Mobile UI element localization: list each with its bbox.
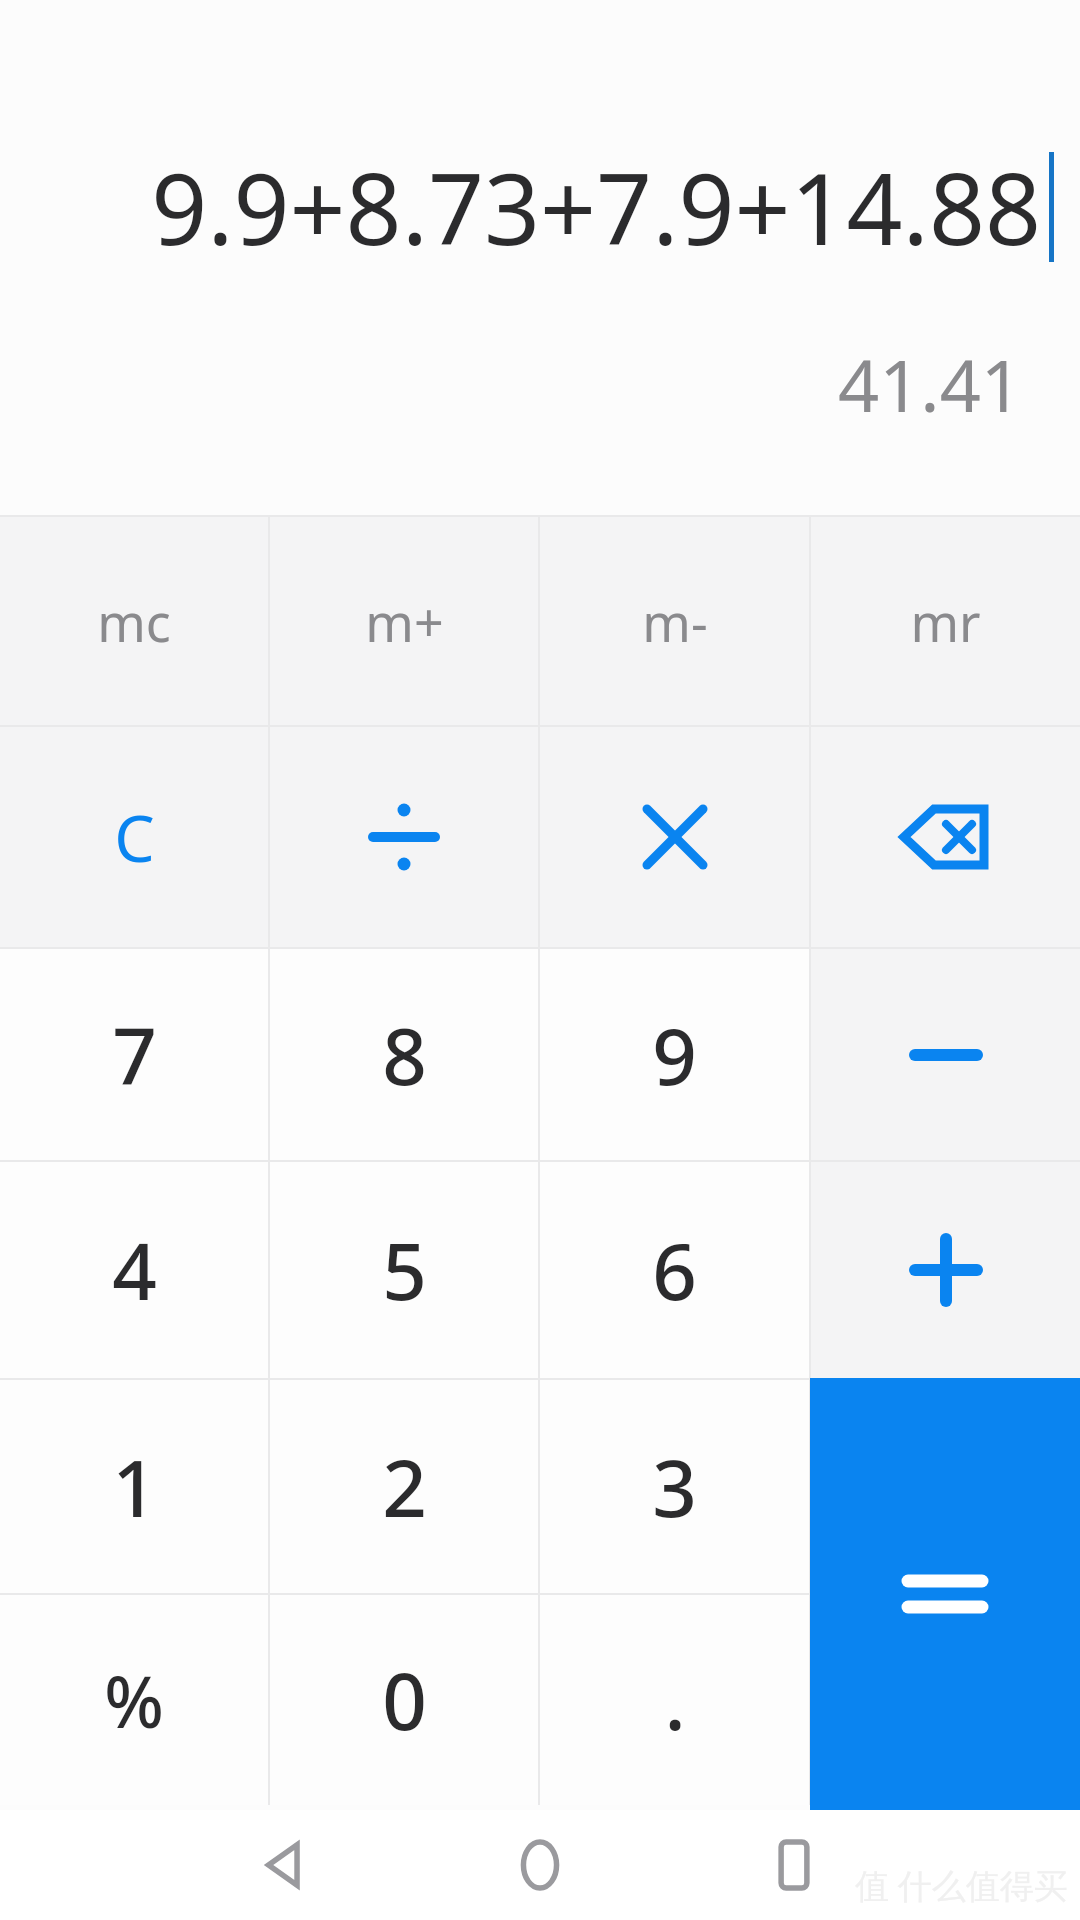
button[interactable]: Recent apps — [748, 1819, 840, 1911]
staticText: 4 — [112, 1217, 157, 1323]
button[interactable]: 1 — [0, 1380, 268, 1593]
button[interactable]: 8 — [270, 949, 538, 1160]
staticText: 8 — [382, 1002, 427, 1108]
staticText: 5 — [382, 1217, 427, 1323]
button[interactable]: Equals — [810, 1378, 1080, 1810]
staticText: m- — [642, 586, 708, 657]
staticText: 值 什么值得买 — [855, 1862, 1068, 1908]
staticText: mc — [97, 586, 171, 657]
button[interactable]: Divide — [270, 727, 538, 947]
staticText: 9.9+8.73+7.9+14.88 — [151, 140, 1041, 273]
button[interactable]: mr — [811, 517, 1080, 725]
staticText: 1 — [112, 1434, 157, 1540]
button[interactable]: % — [0, 1595, 268, 1805]
button[interactable]: 0 — [270, 1595, 538, 1805]
staticText: % — [104, 1653, 164, 1748]
staticText: 9 — [652, 1002, 697, 1108]
staticText: . — [664, 1647, 686, 1753]
button[interactable]: 5 — [270, 1162, 538, 1378]
staticText: mr — [910, 586, 981, 657]
button[interactable]: 3 — [540, 1380, 809, 1593]
staticText: 7 — [112, 1002, 157, 1108]
button[interactable]: 2 — [270, 1380, 538, 1593]
button[interactable]: . — [540, 1595, 809, 1805]
button[interactable]: Multiply — [540, 727, 809, 947]
button[interactable]: Minus — [811, 949, 1080, 1160]
staticText: 6 — [652, 1217, 697, 1323]
button[interactable]: Backspace — [811, 727, 1080, 947]
staticText: 41.41 — [837, 335, 1022, 433]
button[interactable]: Home — [494, 1819, 586, 1911]
staticText: m+ — [365, 586, 444, 657]
button[interactable]: Plus — [811, 1162, 1080, 1378]
staticText: C — [114, 794, 155, 881]
button[interactable]: mc — [0, 517, 268, 725]
button[interactable]: 7 — [0, 949, 268, 1160]
button[interactable]: C — [0, 727, 268, 947]
button[interactable]: 6 — [540, 1162, 809, 1378]
staticText: 0 — [382, 1647, 427, 1753]
button[interactable]: m+ — [270, 517, 538, 725]
staticText: 3 — [652, 1434, 697, 1540]
staticText: 2 — [382, 1434, 427, 1540]
button[interactable]: Back — [240, 1819, 332, 1911]
button[interactable]: m- — [540, 517, 809, 725]
button[interactable]: 9 — [540, 949, 809, 1160]
button[interactable]: 4 — [0, 1162, 268, 1378]
